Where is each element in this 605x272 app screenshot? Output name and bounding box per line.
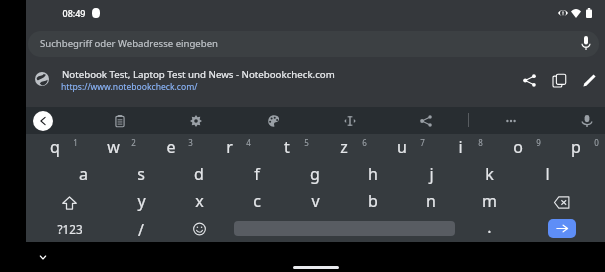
button[interactable] — [228, 189, 286, 216]
staticText: 8 — [478, 137, 483, 148]
button[interactable]: Shift — [41, 189, 98, 216]
button[interactable] — [170, 189, 228, 216]
button[interactable] — [402, 162, 460, 189]
staticText: c — [253, 190, 261, 212]
staticText: Notebook Test, Laptop Test und News - No… — [62, 68, 335, 81]
staticText: 08:49 — [62, 7, 86, 19]
staticText: 3 — [188, 137, 193, 148]
staticText: ?123 — [57, 221, 83, 237]
staticText: . — [487, 216, 492, 238]
staticText: s — [137, 163, 145, 185]
staticText: b — [368, 190, 378, 212]
button[interactable] — [26, 135, 84, 162]
staticText: r — [226, 136, 233, 158]
button[interactable] — [402, 189, 460, 216]
staticText: i — [458, 136, 463, 158]
button[interactable]: Enter — [548, 219, 576, 238]
button[interactable]: Text editing — [339, 110, 361, 132]
button[interactable] — [54, 162, 112, 189]
button[interactable]: Share — [517, 68, 541, 92]
staticText: 4 — [246, 137, 251, 148]
button[interactable] — [26, 58, 605, 104]
button[interactable] — [41, 216, 99, 243]
button[interactable]: Theme — [263, 110, 285, 132]
staticText: g — [310, 163, 320, 185]
button[interactable] — [112, 216, 170, 243]
staticText: t — [284, 136, 290, 158]
staticText: 2 — [131, 137, 136, 148]
staticText: https://www.notebookcheck.com/ — [61, 81, 198, 93]
staticText: n — [426, 190, 436, 212]
button[interactable]: Hide keyboard — [35, 249, 51, 265]
staticText: Suchbegriff oder Webadresse eingeben — [40, 37, 219, 50]
button[interactable] — [460, 189, 518, 216]
staticText: 5 — [304, 137, 309, 148]
staticText: 6 — [362, 137, 367, 148]
button[interactable] — [547, 135, 605, 162]
button[interactable] — [170, 162, 228, 189]
staticText: o — [513, 136, 523, 158]
button[interactable] — [489, 135, 547, 162]
staticText: 7 — [420, 137, 425, 148]
staticText: l — [545, 163, 550, 185]
button[interactable] — [316, 135, 374, 162]
staticText: e — [166, 136, 176, 158]
button[interactable]: Back — [33, 111, 53, 131]
button[interactable] — [344, 189, 402, 216]
staticText: f — [254, 163, 260, 185]
staticText: q — [50, 136, 60, 158]
staticText: u — [397, 136, 407, 158]
staticText: 9 — [536, 137, 541, 148]
button[interactable]: Backspace — [533, 189, 590, 216]
button[interactable] — [460, 162, 518, 189]
button[interactable]: Settings — [185, 110, 207, 132]
button[interactable] — [142, 135, 200, 162]
staticText: 1 — [73, 137, 78, 148]
button[interactable] — [459, 216, 517, 243]
staticText: 0 — [594, 137, 599, 148]
button[interactable] — [431, 135, 489, 162]
staticText: v — [311, 190, 320, 212]
staticText: x — [195, 190, 204, 212]
staticText: z — [340, 136, 348, 158]
button[interactable]: Share — [415, 110, 437, 132]
staticText: w — [107, 136, 120, 158]
button[interactable]: Search or type web address — [28, 31, 599, 57]
button[interactable] — [286, 162, 344, 189]
button[interactable]: More options — [500, 110, 522, 132]
button[interactable] — [112, 162, 170, 189]
staticText: p — [571, 136, 581, 158]
staticText: d — [194, 163, 204, 185]
button[interactable] — [84, 135, 142, 162]
button[interactable] — [258, 135, 316, 162]
button[interactable] — [344, 162, 402, 189]
button[interactable] — [200, 135, 258, 162]
button[interactable]: Voice input — [576, 110, 598, 132]
button[interactable] — [228, 162, 286, 189]
staticText: j — [429, 163, 434, 185]
staticText: h — [368, 163, 378, 185]
staticText: m — [482, 190, 497, 212]
staticText: / — [138, 219, 144, 241]
button[interactable]: Edit — [577, 68, 601, 92]
staticText: k — [485, 163, 494, 185]
button[interactable] — [518, 162, 576, 189]
button[interactable] — [112, 189, 170, 216]
button[interactable] — [373, 135, 431, 162]
staticText: a — [79, 163, 88, 185]
staticText: y — [137, 190, 146, 212]
button[interactable] — [286, 189, 344, 216]
button[interactable]: Copy — [547, 68, 571, 92]
button[interactable]: Voice search — [575, 32, 597, 54]
button[interactable]: Clipboard — [109, 110, 131, 132]
button[interactable]: Emoji — [193, 222, 206, 236]
